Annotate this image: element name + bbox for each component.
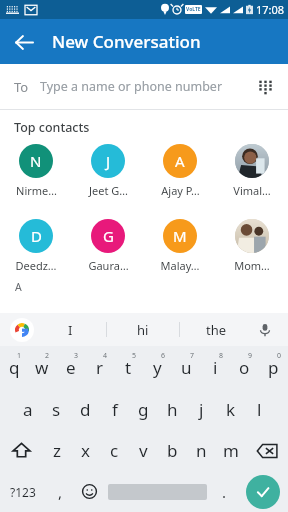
button[interactable]: q (0, 346, 28, 388)
button[interactable]: Send (246, 475, 280, 509)
staticText: l (257, 398, 262, 421)
staticText: Nirme… (16, 183, 57, 198)
staticText: q (9, 356, 20, 379)
staticText: . (222, 482, 227, 502)
staticText: x (81, 439, 90, 462)
button[interactable]: o (230, 346, 259, 388)
staticText: n (196, 439, 207, 462)
staticText: h (167, 398, 178, 421)
button[interactable]: J (72, 142, 144, 200)
button[interactable]: r (85, 346, 114, 388)
staticText: Malay… (160, 258, 200, 273)
button[interactable]: x (71, 430, 100, 471)
button[interactable]: g (129, 388, 158, 430)
staticText: 3 (74, 351, 79, 361)
button[interactable]: Mom… (216, 217, 288, 275)
staticText: c (110, 439, 119, 462)
button[interactable]: Backspace (245, 430, 288, 471)
staticText: Top contacts (14, 119, 90, 136)
staticText: Gaura… (88, 258, 129, 273)
staticText: 6 (161, 351, 166, 361)
button[interactable]: Voice input (252, 317, 278, 343)
button[interactable]: h (158, 388, 187, 430)
button[interactable]: Google (10, 318, 34, 342)
staticText: 4 (103, 351, 108, 361)
button[interactable]: v (129, 430, 158, 471)
button[interactable]: hi (107, 313, 179, 346)
button[interactable]: M (144, 217, 216, 275)
button[interactable]: D (0, 217, 72, 275)
button[interactable]: l (245, 388, 274, 430)
button[interactable]: , (46, 471, 74, 512)
staticText: VoLTE (186, 6, 201, 13)
button[interactable]: Shift (0, 430, 42, 471)
staticText: 9 (248, 351, 253, 361)
staticText: D (31, 226, 42, 246)
button[interactable]: u (172, 346, 201, 388)
staticText: M (173, 226, 187, 246)
staticText: 5 (132, 351, 137, 361)
staticText: hi (137, 321, 149, 339)
button[interactable]: d (71, 388, 100, 430)
staticText: Type a name or phone number (40, 78, 223, 95)
button[interactable]: e (56, 346, 85, 388)
staticText: k (226, 398, 236, 421)
button[interactable]: ?123 (0, 471, 46, 512)
staticText: m (223, 439, 239, 462)
staticText: Ajay P… (161, 183, 200, 198)
staticText: a (23, 398, 33, 421)
staticText: w (35, 356, 49, 379)
staticText: ?123 (10, 484, 36, 500)
button[interactable]: the (180, 313, 252, 346)
staticText: g (138, 398, 149, 421)
staticText: J (106, 151, 111, 171)
button[interactable]: c (100, 430, 129, 471)
staticText: 8 (219, 351, 224, 361)
button[interactable]: p (259, 346, 288, 388)
staticText: Deedz… (15, 258, 57, 273)
staticText: the (206, 321, 227, 339)
button[interactable]: f (100, 388, 129, 430)
staticText: 1 (17, 351, 22, 361)
button[interactable]: j (187, 388, 216, 430)
button[interactable]: G (72, 217, 144, 275)
button[interactable]: t (114, 346, 143, 388)
button[interactable]: i (201, 346, 230, 388)
button[interactable]: I (34, 313, 106, 346)
staticText: A (15, 280, 22, 294)
button[interactable]: y (143, 346, 172, 388)
staticText: G (103, 226, 114, 246)
button[interactable]: b (158, 430, 187, 471)
staticText: t (125, 356, 132, 379)
button[interactable]: N (0, 142, 72, 200)
button[interactable]: Dialpad (248, 70, 282, 104)
button[interactable]: n (187, 430, 216, 471)
staticText: New Conversation (52, 30, 201, 53)
staticText: Mom… (234, 258, 270, 273)
staticText: A (175, 151, 185, 171)
staticText: Jeet G… (89, 183, 128, 198)
button[interactable]: w (28, 346, 56, 388)
staticText: v (139, 439, 148, 462)
button[interactable]: z (42, 430, 71, 471)
staticText: o (239, 356, 250, 379)
staticText: s (52, 398, 61, 421)
button[interactable]: m (216, 430, 245, 471)
staticText: b (167, 439, 178, 462)
button[interactable]: k (216, 388, 245, 430)
staticText: d (80, 398, 91, 421)
button[interactable]: a (14, 388, 42, 430)
staticText: I (68, 321, 73, 339)
staticText: i (213, 356, 218, 379)
staticText: , (58, 482, 63, 502)
button[interactable]: Vimal… (216, 142, 288, 200)
staticText: r (96, 356, 104, 379)
button[interactable]: s (42, 388, 71, 430)
button[interactable]: Emoji (74, 471, 105, 512)
button[interactable]: . (210, 471, 238, 512)
staticText: z (53, 439, 61, 462)
button[interactable]: A (144, 142, 216, 200)
staticText: y (153, 356, 162, 379)
button[interactable]: Back (8, 26, 40, 58)
